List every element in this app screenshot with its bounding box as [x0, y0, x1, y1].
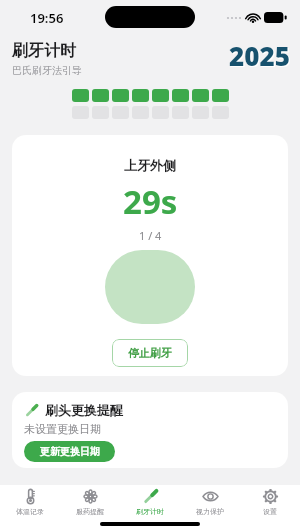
- staticText: 刷牙计时: [12, 41, 76, 61]
- staticText: 停止刷牙: [128, 346, 172, 360]
- staticText: 29s: [123, 179, 178, 224]
- button[interactable]: 更新更换日期: [24, 441, 115, 462]
- other: Medication reminder: [82, 488, 99, 505]
- staticText: 1 / 4: [139, 228, 162, 243]
- staticText: 19:56: [30, 9, 64, 27]
- staticText: 体温记录: [16, 507, 44, 516]
- staticText: 2025: [230, 39, 291, 74]
- button[interactable]: Vision protection: [180, 485, 240, 518]
- staticText: 未设置更换日期: [24, 422, 101, 436]
- other: Toothbrush: [142, 488, 159, 505]
- staticText: 更新更换日期: [40, 445, 100, 458]
- other: Toothbrush: [24, 403, 39, 418]
- button[interactable]: Toothbrush: [120, 485, 180, 518]
- staticText: 服药提醒: [76, 507, 104, 516]
- staticText: 上牙外侧: [124, 157, 176, 173]
- staticText: 巴氏刷牙法引导: [12, 64, 82, 77]
- other: Settings: [262, 488, 279, 505]
- other: Vision protection: [202, 488, 219, 505]
- staticText: 视力保护: [196, 507, 224, 516]
- button[interactable]: Medication reminder: [60, 485, 120, 518]
- staticText: 设置: [263, 507, 277, 516]
- staticText: 2025: [229, 38, 290, 73]
- staticText: 刷头更换提醒: [45, 402, 123, 418]
- other: Temperature log: [22, 488, 39, 505]
- button[interactable]: 停止刷牙: [112, 339, 188, 367]
- button[interactable]: Temperature log: [0, 485, 60, 518]
- button[interactable]: Settings: [240, 485, 300, 518]
- staticText: 刷牙计时: [136, 507, 164, 516]
